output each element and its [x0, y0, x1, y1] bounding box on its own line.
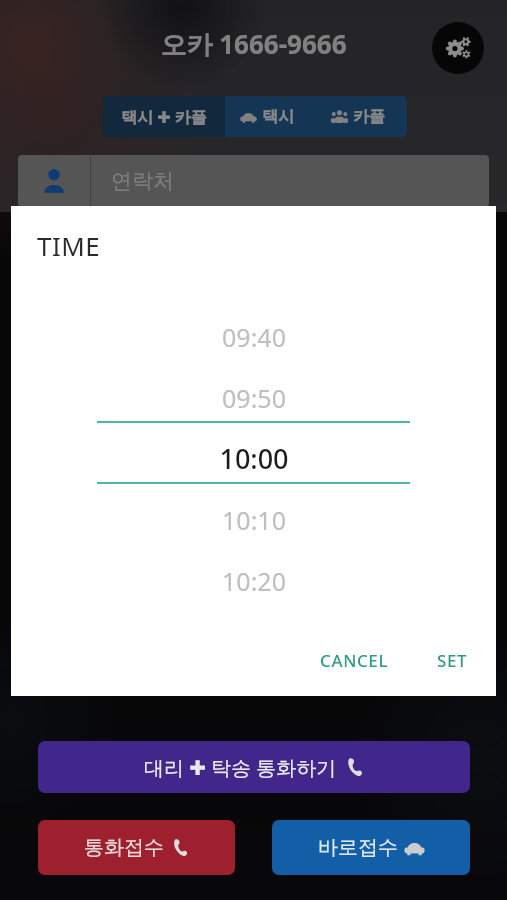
- staticText: 10:20: [222, 564, 286, 598]
- staticText: 10:00: [219, 440, 289, 477]
- staticText: 오카 1666-9666: [0, 26, 507, 62]
- button[interactable]: 연락처: [18, 155, 489, 207]
- staticText: CANCEL: [320, 649, 389, 672]
- button[interactable]: 10:00: [11, 428, 496, 489]
- button[interactable]: 10:10: [11, 489, 496, 550]
- staticText: 09:40: [222, 320, 286, 354]
- button[interactable]: 09:50: [11, 367, 496, 428]
- staticText: 10:10: [222, 503, 286, 537]
- button[interactable]: 카풀: [309, 96, 407, 137]
- button[interactable]: 바로접수: [272, 820, 470, 875]
- button[interactable]: 10:20: [11, 550, 496, 611]
- staticText: 대리 ✚ 탁송 통화하기: [144, 754, 337, 781]
- button[interactable]: Settings: [432, 22, 484, 74]
- button[interactable]: 택시 ✚ 카풀: [103, 96, 225, 137]
- button[interactable]: 택시: [225, 96, 309, 137]
- staticText: 카풀: [353, 107, 385, 127]
- button[interactable]: 통화접수: [38, 820, 235, 875]
- staticText: TIME: [37, 228, 101, 263]
- staticText: 연락처: [111, 168, 174, 194]
- button[interactable]: 09:40: [11, 306, 496, 367]
- button[interactable]: CANCEL: [306, 641, 403, 680]
- button[interactable]: SET: [423, 641, 482, 680]
- staticText: 택시: [262, 107, 294, 127]
- staticText: 택시 ✚ 카풀: [121, 106, 207, 128]
- staticText: 09:50: [222, 381, 286, 415]
- staticText: 통화접수: [84, 835, 164, 860]
- button[interactable]: 대리 ✚ 탁송 통화하기: [38, 741, 470, 793]
- staticText: 바로접수: [318, 835, 398, 860]
- staticText: SET: [437, 649, 468, 672]
